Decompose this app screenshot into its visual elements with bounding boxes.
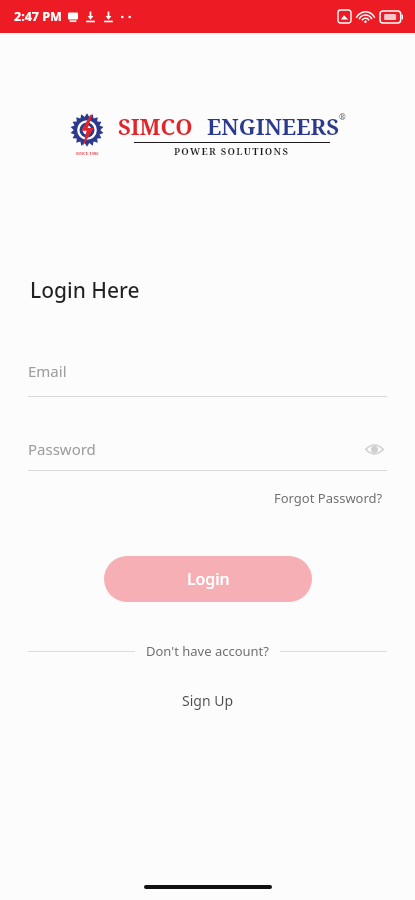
staticText: 2:47 PM xyxy=(14,8,62,25)
staticText: Email xyxy=(28,361,67,381)
staticText: SIMCO xyxy=(118,111,193,141)
button[interactable]: Show password xyxy=(361,436,387,462)
staticText: Login Here xyxy=(30,276,140,305)
staticText: POWER SOLUTIONS xyxy=(174,145,290,158)
staticText: ® xyxy=(339,111,346,122)
button[interactable]: Forgot Password? xyxy=(270,485,387,511)
staticText: Don't have account? xyxy=(146,642,269,660)
staticText: Forgot Password? xyxy=(274,489,383,507)
button[interactable]: Login xyxy=(104,556,312,602)
staticText: SINCE 1986 xyxy=(76,151,99,156)
staticText: Sign Up xyxy=(182,691,234,710)
staticText: Password xyxy=(28,439,96,459)
staticText: Login xyxy=(187,568,230,590)
button[interactable]: Sign Up xyxy=(170,687,246,714)
staticText: ENGINEERS xyxy=(207,111,339,141)
